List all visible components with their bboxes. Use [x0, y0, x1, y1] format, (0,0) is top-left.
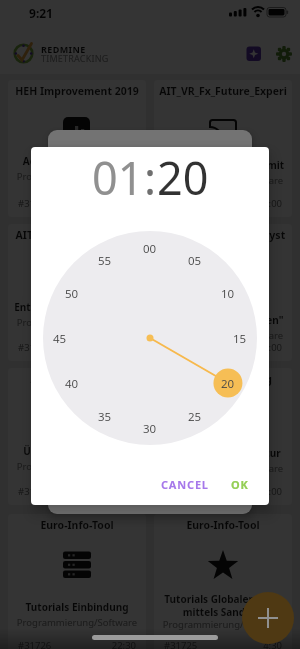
staticText: Programmierung/Software [10, 316, 144, 329]
staticText: 05 [188, 253, 202, 267]
staticText: 2:30 [18, 197, 136, 210]
staticText: 55 [98, 253, 112, 267]
staticText: AIT_VR_Anpassung [158, 372, 288, 386]
staticText: 40 [65, 376, 79, 390]
staticText: 15 [233, 331, 247, 345]
staticText: Euro-Info-Tool [12, 518, 142, 532]
staticText: 50 [65, 286, 79, 300]
staticText: AIT_VR_Fz_Analyse 2019 [12, 228, 142, 242]
button[interactable]: AIT_VR_Fx_Future_Experi [154, 80, 292, 217]
button[interactable]: 20 [213, 376, 243, 390]
staticText: 25 [188, 409, 202, 423]
staticText: 6:00 [164, 485, 282, 498]
button[interactable]: 35 [90, 409, 120, 423]
button[interactable]: 45 [45, 331, 75, 345]
button[interactable]: AIT_Struktur 2019 [8, 368, 146, 505]
button[interactable] [242, 592, 294, 644]
staticText: #31722 [164, 197, 282, 210]
staticText: 30 [143, 421, 157, 435]
staticText: 7:00 [18, 485, 136, 498]
button[interactable]: 30 [135, 421, 165, 435]
button[interactable]: 50 [57, 286, 87, 300]
staticText: 10 [221, 286, 235, 300]
staticText: Programmierung/Software [10, 170, 144, 183]
staticText: Anpassung Architektur [156, 446, 290, 460]
staticText: 35 [98, 409, 112, 423]
button[interactable]: CANCEL [155, 473, 215, 495]
staticText: Programmierung/Software [156, 618, 290, 631]
button[interactable]: 40 [57, 376, 87, 390]
staticText: 3:00 [164, 341, 282, 354]
staticText: 45 [53, 331, 67, 345]
staticText: AIT_Struktur 2019 [12, 372, 142, 386]
staticText: Tutorials Einbindung [10, 600, 144, 614]
staticText: REDMINE [41, 43, 121, 55]
staticText: Programmierung/Software [156, 462, 290, 475]
staticText: #31720 [18, 485, 136, 498]
staticText: Accessibility Kriterien [10, 154, 144, 168]
button[interactable]: AIT_VR_Fz_Analyse 2019 [8, 224, 146, 361]
staticText: Automatisierter Commit [156, 158, 290, 172]
button[interactable]: 55 [90, 253, 120, 267]
button[interactable]: 25 [180, 409, 210, 423]
staticText: 00 [143, 241, 157, 255]
staticText: AIT_VR_Fx_Future_Experi [158, 84, 288, 98]
button[interactable]: 05 [180, 253, 210, 267]
staticText: Entwicklung Mechaniken [10, 300, 144, 314]
staticText: 8:00 [18, 341, 136, 354]
staticText: Überarbeitung Seiten [10, 444, 144, 458]
button[interactable]: Euro-Info-Tool [8, 514, 146, 649]
staticText: Euro-Info-Tool [158, 518, 288, 532]
button[interactable]: Euro-Info-Tool [154, 514, 292, 649]
button[interactable]: AIT_VR_Fx_Data_Analyst [154, 224, 292, 361]
button[interactable]: AIT_VR_Anpassung [154, 368, 292, 505]
staticText: 12:00 [164, 197, 282, 210]
staticText: Überarbeitung "Szenen" [156, 313, 290, 327]
staticText: HEH Improvement 2019 [12, 84, 142, 98]
staticText: 01 [92, 147, 144, 197]
staticText: #31724 [164, 341, 282, 354]
staticText: 22:30 [18, 639, 136, 649]
staticText: #31719 [164, 485, 282, 498]
staticText: Programmierung/Software [10, 460, 144, 473]
staticText: 9:21 [24, 5, 58, 21]
staticText: Programmierung/Software [156, 174, 290, 187]
staticText: Programmierung/Software [156, 329, 290, 342]
button[interactable] [246, 46, 262, 63]
staticText: TIMETRACKING [41, 52, 121, 64]
staticText: #31723 [18, 341, 136, 354]
button[interactable]: 15 [225, 331, 255, 345]
staticText: #31725 [164, 639, 282, 649]
staticText: mittels Sandbox [156, 605, 290, 619]
button[interactable] [276, 46, 292, 62]
staticText: CANCEL [161, 477, 209, 492]
button[interactable]: 10 [213, 286, 243, 300]
button[interactable]: 00 [135, 241, 165, 255]
staticText: Tutorials Globaler State [156, 592, 290, 606]
button[interactable]: HEH Improvement 2019 [8, 80, 146, 217]
staticText: OK [231, 477, 249, 492]
staticText: #31726 [18, 639, 136, 649]
staticText: 20 [221, 376, 235, 390]
staticText: #31721 [18, 197, 136, 210]
staticText: 4:30 [164, 639, 282, 649]
staticText: 20 [157, 147, 209, 197]
staticText: AIT_VR_Fx_Data_Analyst [158, 228, 288, 242]
staticText: : [144, 147, 157, 197]
button[interactable]: OK [223, 473, 256, 495]
staticText: Programmierung/Software [10, 616, 144, 629]
